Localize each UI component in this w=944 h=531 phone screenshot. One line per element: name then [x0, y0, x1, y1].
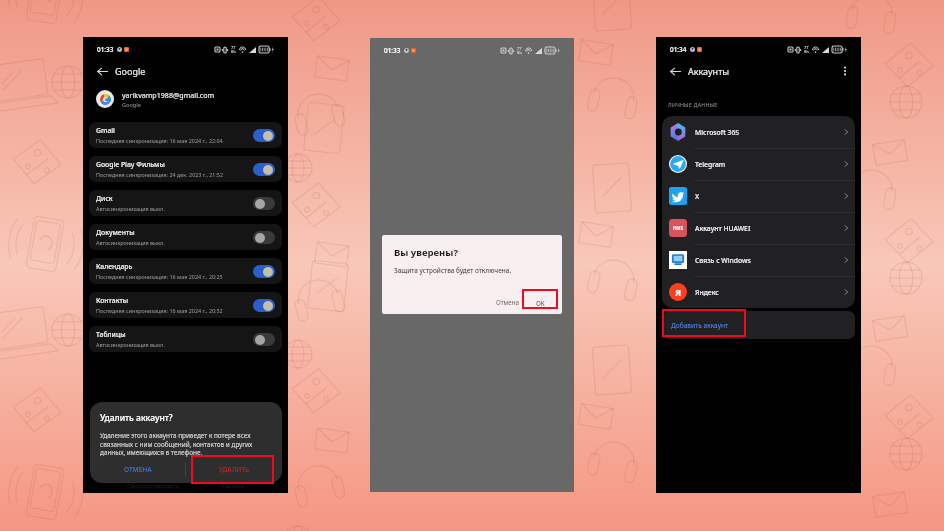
button[interactable]: Telegram	[669, 148, 850, 180]
button[interactable]: OK	[523, 293, 558, 312]
staticText: Контакты	[96, 296, 129, 305]
button[interactable]: Отмена	[493, 294, 522, 310]
button[interactable]	[253, 299, 275, 312]
staticText: Вы уверены?	[394, 246, 458, 259]
button[interactable]	[253, 197, 275, 210]
button[interactable]: Gmail	[89, 122, 282, 148]
button[interactable]: Back	[666, 62, 684, 80]
button[interactable]: Back	[93, 62, 111, 80]
button[interactable]	[253, 231, 275, 244]
button[interactable]: Добавить аккаунт	[662, 311, 855, 339]
staticText: Автосинхронизация выкл.	[96, 205, 165, 212]
staticText: 77	[804, 45, 809, 50]
staticText: Автосинхронизация выкл.	[96, 341, 165, 348]
staticText: HMS	[673, 225, 683, 231]
staticText: ОТМЕНА	[124, 465, 152, 474]
staticText: Удалить аккаунт?	[100, 412, 173, 424]
staticText: Автосинхронизация выкл.	[96, 239, 165, 246]
button[interactable]: HMS	[669, 212, 850, 244]
staticText: Защита устройства будет отключена.	[394, 266, 512, 275]
staticText: Яндекс	[695, 288, 719, 297]
staticText: B/s	[804, 50, 809, 54]
button[interactable]	[253, 333, 275, 346]
staticText: Последняя синхронизация: 16 мая 2024 г.,…	[96, 273, 223, 280]
staticText: Последняя синхронизация: 16 мая 2024 г.,…	[96, 137, 223, 144]
button[interactable]	[253, 163, 275, 176]
staticText: ЛИЧНЫЕ ДАННЫЕ	[668, 101, 718, 108]
staticText: 01:33	[384, 46, 401, 55]
button[interactable]	[253, 265, 275, 278]
button[interactable]: УДАЛИТЬ	[186, 456, 282, 483]
staticText: 01:34	[670, 45, 687, 54]
staticText: OK	[536, 299, 545, 307]
button[interactable]: X	[669, 180, 850, 212]
staticText: 77	[231, 45, 236, 50]
button[interactable]: ОТМЕНА	[90, 456, 185, 483]
button[interactable]: Я	[669, 276, 850, 308]
staticText: Удаление этого аккаунта приведет к потер…	[100, 431, 272, 456]
staticText: Связь с Windows	[695, 256, 751, 265]
staticText: Удалить	[222, 482, 244, 490]
staticText: Аккаунты	[688, 65, 730, 77]
button[interactable]: Google Play Фильмы	[89, 156, 282, 182]
staticText: B/s	[517, 51, 522, 55]
staticText: Синхронизировать	[127, 482, 179, 490]
staticText: X	[695, 192, 700, 201]
staticText: Добавить аккаунт	[671, 321, 729, 330]
staticText: Microsoft 365	[695, 128, 740, 137]
button[interactable]: Microsoft 365	[669, 116, 850, 148]
staticText: Таблицы	[96, 330, 126, 339]
staticText: Я	[675, 286, 682, 298]
staticText: Gmail	[96, 126, 115, 135]
button[interactable]: Связь с Windows	[669, 244, 850, 276]
button[interactable]: Таблицы	[89, 326, 282, 352]
staticText: Google	[115, 65, 146, 77]
staticText: Диск	[96, 194, 113, 203]
staticText: Документы	[96, 228, 135, 237]
button[interactable]: Контакты	[89, 292, 282, 318]
button[interactable]: Календарь	[89, 258, 282, 284]
button[interactable]: Документы	[89, 224, 282, 250]
staticText: Google	[122, 101, 141, 109]
staticText: Google Play Фильмы	[96, 160, 165, 169]
staticText: Аккаунт HUAWEI	[695, 224, 751, 233]
button[interactable]: yarikvamp1988@gmail.com	[96, 89, 288, 109]
staticText: Последняя синхронизация: 24 дек. 2023 г.…	[96, 171, 224, 178]
staticText: yarikvamp1988@gmail.com	[122, 90, 215, 100]
staticText: Отмена	[496, 298, 519, 306]
staticText: 01:33	[97, 45, 114, 54]
staticText: Календарь	[96, 262, 133, 271]
button[interactable]	[253, 129, 275, 142]
button[interactable]: More options	[837, 63, 853, 79]
staticText: УДАЛИТЬ	[219, 465, 250, 474]
button[interactable]: Диск	[89, 190, 282, 216]
staticText: Telegram	[695, 160, 726, 169]
staticText: Последняя синхронизация: 16 мая 2024 г.,…	[96, 307, 223, 314]
staticText: B/s	[231, 50, 236, 54]
staticText: 77	[517, 46, 522, 51]
